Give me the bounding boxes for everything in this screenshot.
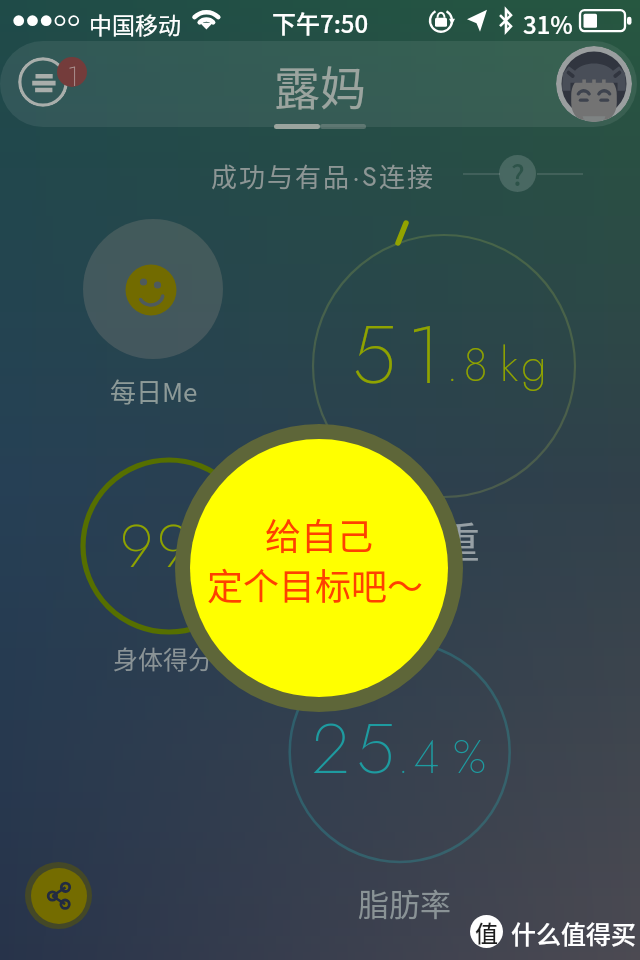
button[interactable] <box>190 439 448 697</box>
staticText: .4 <box>397 724 444 790</box>
staticText: 中国移动 <box>89 7 181 40</box>
staticText: 下午7:50 <box>272 5 369 40</box>
staticText: .8 <box>446 332 493 398</box>
staticText: 成功与有品 <box>211 157 352 195</box>
staticText: 51 <box>352 297 451 413</box>
staticText: ·S <box>352 157 379 196</box>
button[interactable]: Share <box>25 862 92 929</box>
staticText: 脂肪率 <box>358 880 451 925</box>
staticText: 1 <box>67 57 79 86</box>
staticText: 每日Me <box>110 372 198 410</box>
staticText: % <box>453 724 486 790</box>
staticText: 值 <box>475 915 498 948</box>
button[interactable]: Profile <box>556 46 632 122</box>
staticText: 身体得分 <box>113 640 214 676</box>
staticText: 25 <box>312 698 403 799</box>
staticText: 给自己 <box>265 508 374 560</box>
staticText: 99 <box>120 503 194 590</box>
button[interactable]: Menu <box>18 57 68 107</box>
staticText: 连接 <box>379 157 436 195</box>
staticText: 体重 <box>396 509 481 570</box>
staticText: 什么值得买 <box>511 915 637 951</box>
staticText: ? <box>511 155 525 191</box>
staticText: 定个目标吧～ <box>207 558 424 610</box>
staticText: 露妈 <box>274 52 366 119</box>
staticText: 31% <box>523 6 573 41</box>
button[interactable]: Help <box>499 155 536 192</box>
staticText: kg <box>500 332 551 398</box>
button[interactable]: Daily Me <box>83 219 223 359</box>
